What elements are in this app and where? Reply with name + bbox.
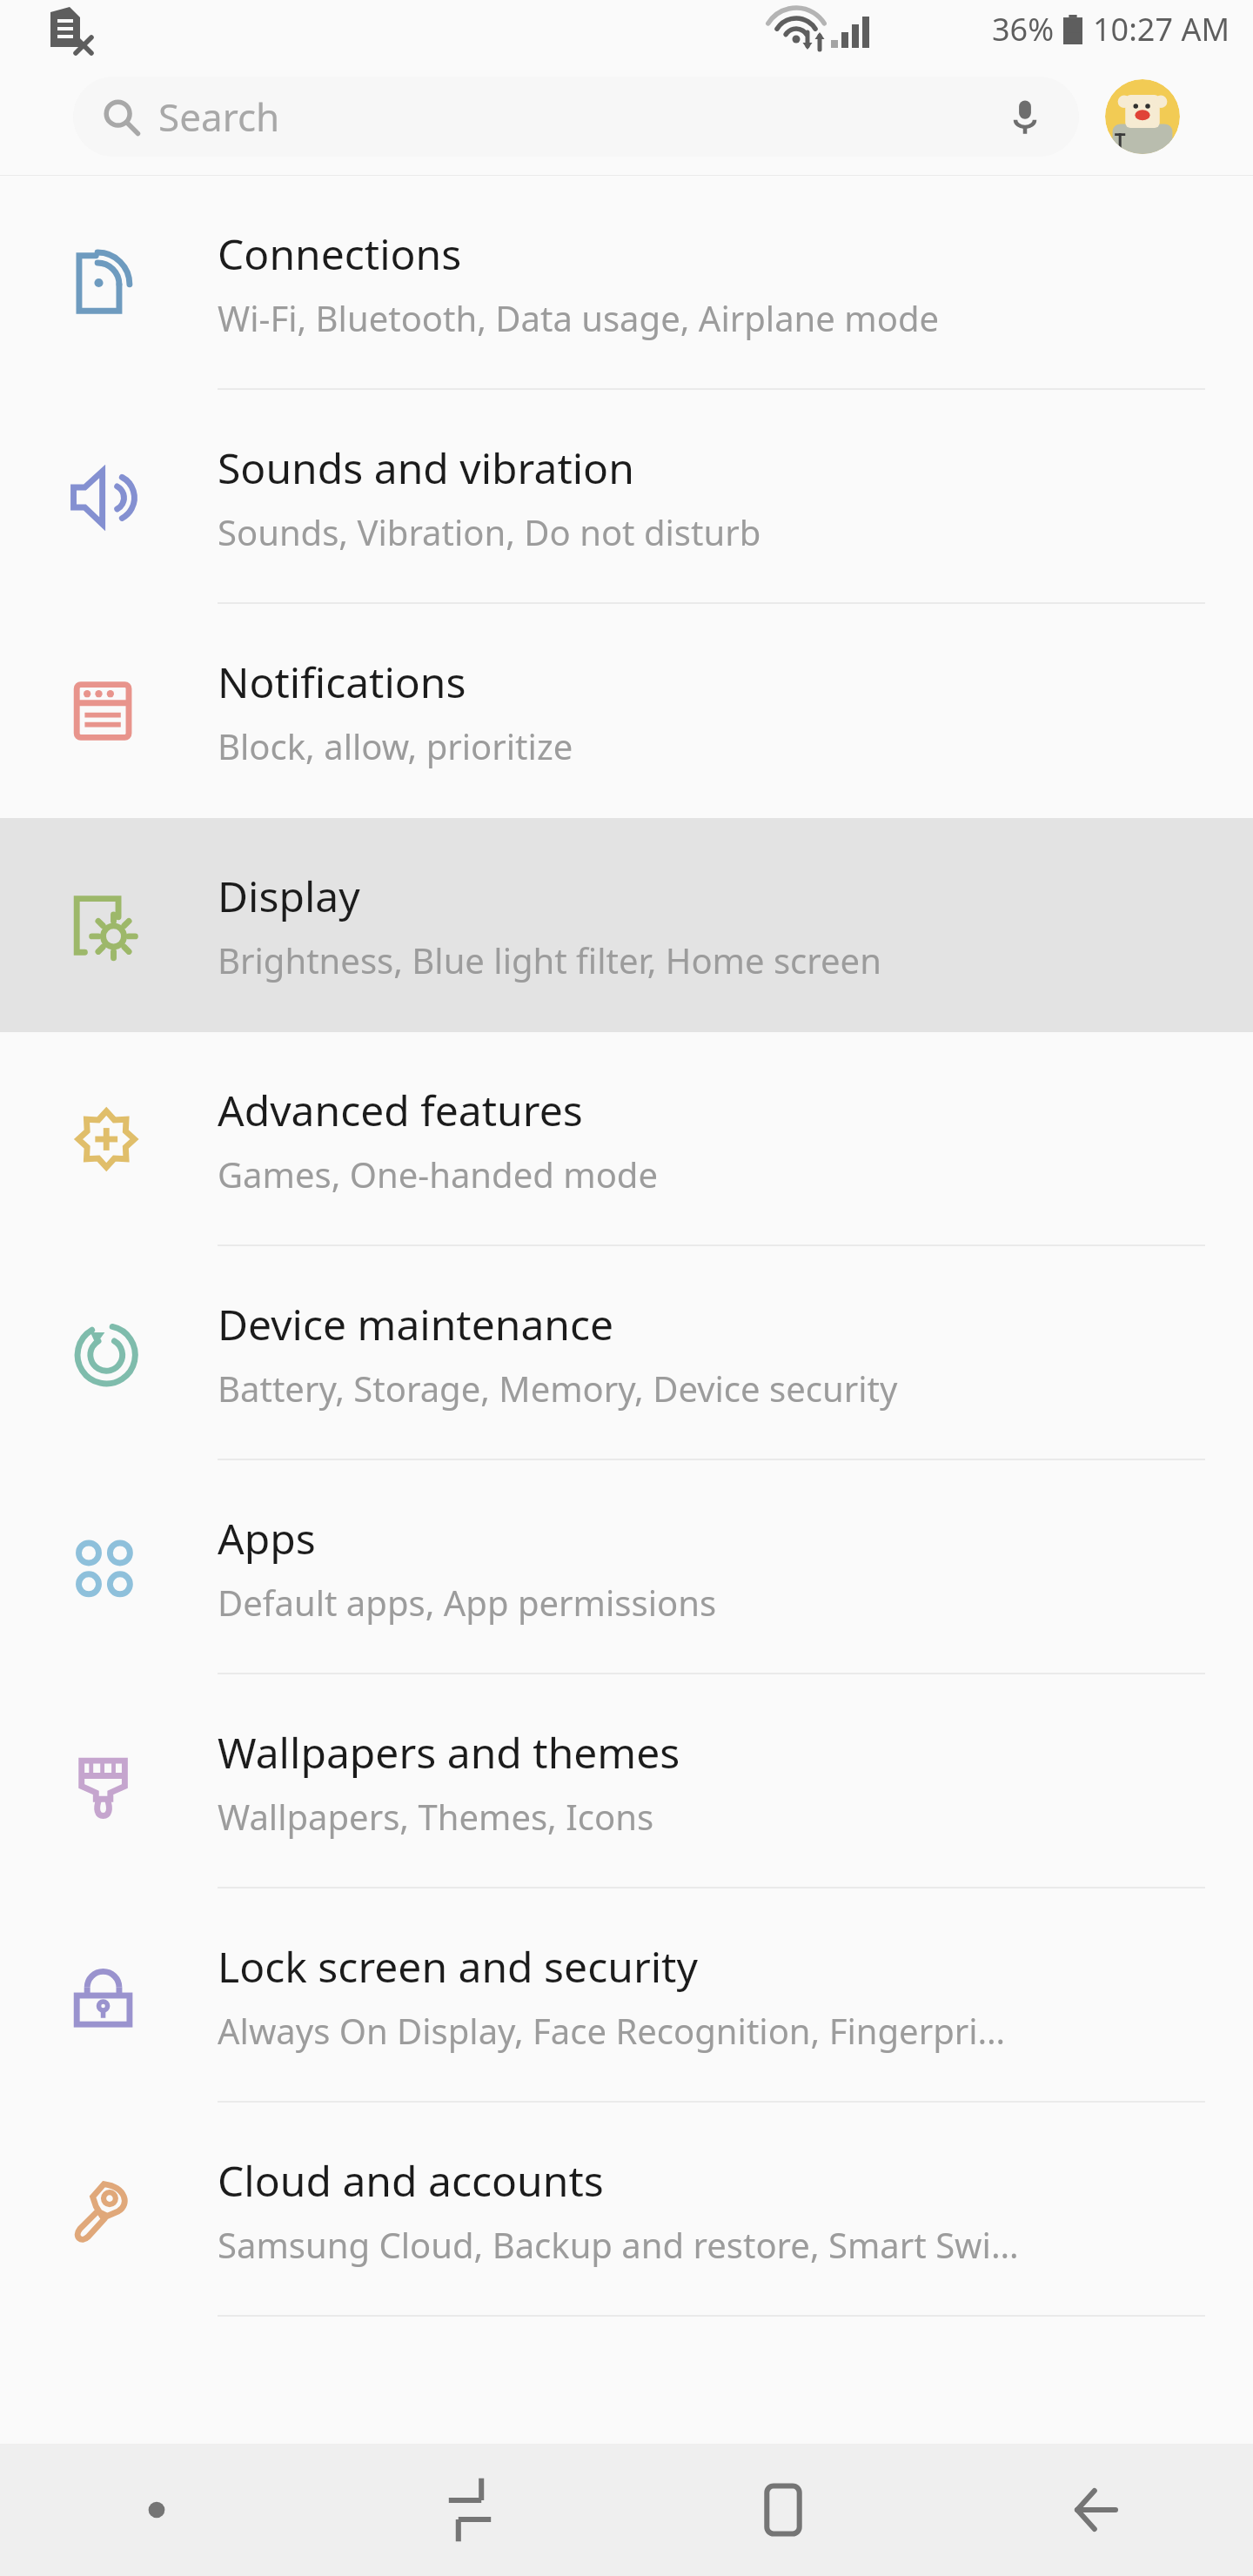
button[interactable]: Voice search — [1001, 92, 1049, 141]
staticText: Lock screen and security — [218, 1938, 698, 1995]
button[interactable]: Wallpapers and themes — [0, 1674, 1253, 1888]
staticText: Wi-Fi, Bluetooth, Data usage, Airplane m… — [218, 294, 940, 341]
staticText: Advanced features — [218, 1082, 583, 1138]
staticText: Brightness, Blue light filter, Home scre… — [218, 936, 881, 983]
staticText: Sounds, Vibration, Do not disturb — [218, 508, 761, 555]
staticText: 10:27 AM — [1093, 8, 1230, 50]
button[interactable]: Back — [940, 2444, 1253, 2576]
staticText: Always On Display, Face Recognition, Fin… — [218, 2007, 1006, 2054]
staticText: Wallpapers, Themes, Icons — [218, 1793, 654, 1840]
staticText: Display — [218, 868, 360, 924]
staticText: Block, allow, prioritize — [218, 722, 573, 769]
staticText: 36% — [992, 8, 1055, 50]
button[interactable]: Display — [0, 818, 1253, 1032]
staticText: Sounds and vibration — [218, 439, 634, 496]
staticText: Device maintenance — [218, 1296, 614, 1352]
staticText: Samsung Cloud, Backup and restore, Smart… — [218, 2221, 1019, 2268]
staticText: Connections — [218, 225, 462, 282]
button[interactable]: Advanced features — [0, 1032, 1253, 1246]
button[interactable]: Lock screen and security — [0, 1888, 1253, 2103]
button[interactable]: Connections — [0, 176, 1253, 390]
button[interactable]: Search — [73, 77, 1079, 157]
staticText: Search — [158, 91, 1001, 143]
button[interactable]: Cloud and accounts — [0, 2103, 1253, 2317]
staticText: Notifications — [218, 654, 466, 710]
button[interactable]: Sounds and vibration — [0, 390, 1253, 604]
staticText: Games, One-handed mode — [218, 1150, 658, 1197]
button[interactable]: Recents — [313, 2444, 626, 2576]
staticText: Wallpapers and themes — [218, 1724, 680, 1781]
staticText: Default apps, App permissions — [218, 1579, 717, 1626]
button[interactable]: Apps — [0, 1460, 1253, 1674]
button[interactable]: Profile — [1105, 79, 1180, 154]
button[interactable]: Device maintenance — [0, 1246, 1253, 1460]
staticText: Apps — [218, 1510, 316, 1566]
button[interactable]: Home — [626, 2444, 940, 2576]
button[interactable]: Notifications — [0, 604, 1253, 818]
button[interactable]: Menu — [0, 2444, 313, 2576]
staticText: Battery, Storage, Memory, Device securit… — [218, 1365, 898, 1412]
staticText: Cloud and accounts — [218, 2152, 604, 2209]
